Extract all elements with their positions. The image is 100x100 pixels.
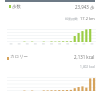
staticText: 17.2 km [80, 16, 95, 21]
button[interactable]: Steps [0, 0, 100, 100]
button[interactable]: Calories [0, 0, 100, 100]
staticText: カロリー [10, 54, 28, 60]
staticText: 23,943 歩 [75, 4, 95, 10]
staticText: 歩数 [12, 4, 21, 10]
staticText: 1,402 kcal [80, 65, 95, 69]
staticText: 2,131 kcal [74, 54, 95, 60]
staticText: 移動距離 [65, 17, 78, 21]
